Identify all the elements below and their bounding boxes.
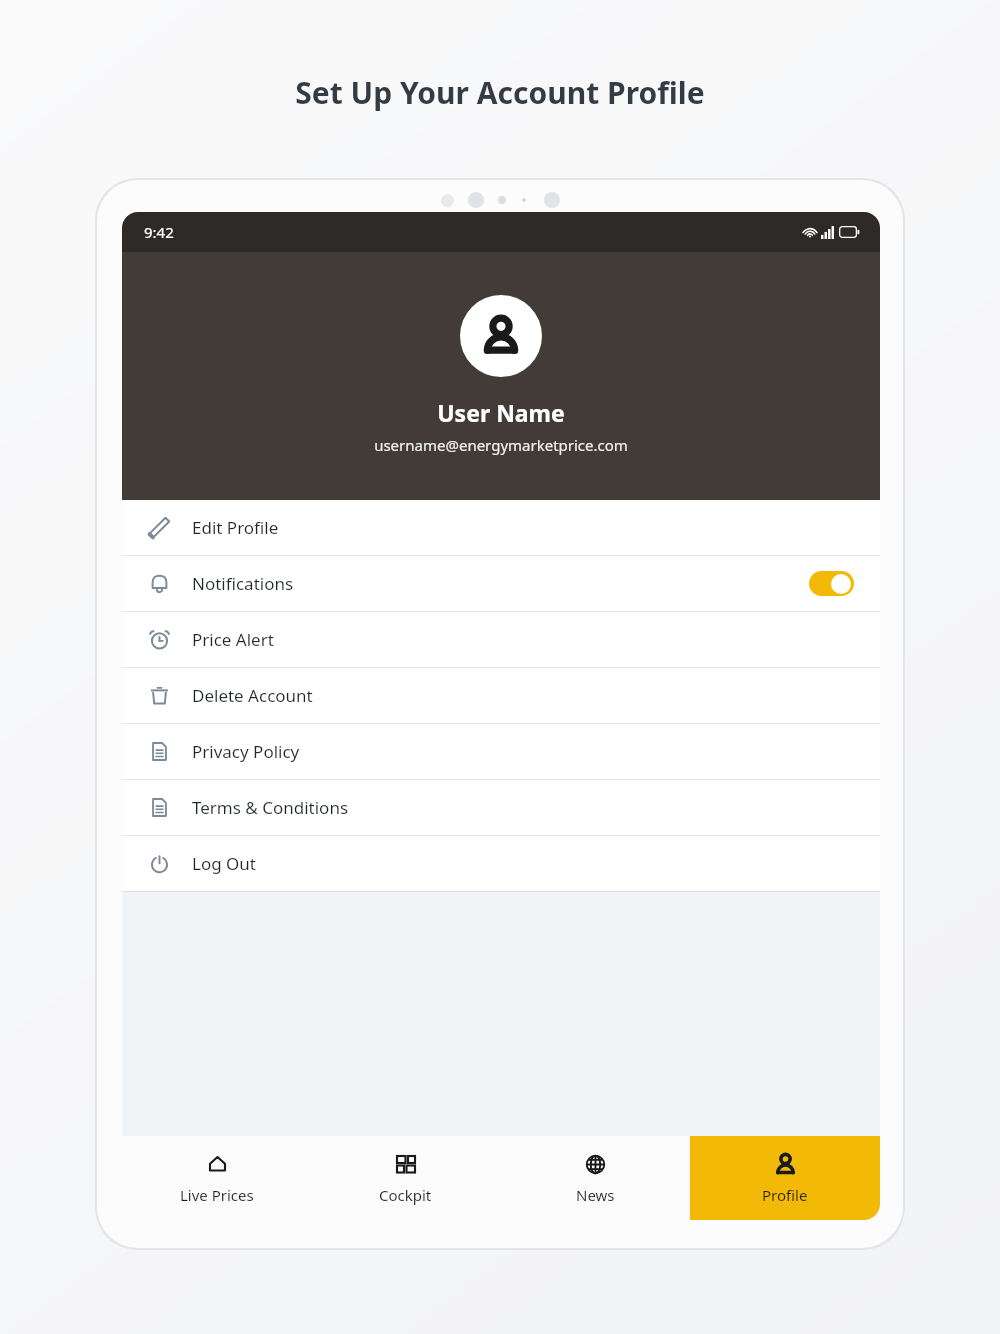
staticText: Delete Account xyxy=(192,684,313,707)
staticText: News xyxy=(576,1185,615,1205)
button[interactable]: Cockpit xyxy=(311,1136,500,1220)
button[interactable]: Terms & Conditions xyxy=(122,780,880,835)
button[interactable]: Profile xyxy=(690,1136,880,1220)
button[interactable]: Live Prices xyxy=(122,1136,311,1220)
staticText: Log Out xyxy=(192,852,256,875)
staticText: Set Up Your Account Profile xyxy=(295,72,705,113)
button[interactable]: Log Out xyxy=(122,836,880,891)
staticText: Terms & Conditions xyxy=(192,796,349,819)
staticText: Profile xyxy=(762,1185,808,1205)
button[interactable]: Notifications toggle xyxy=(809,571,854,596)
button[interactable]: News xyxy=(500,1136,690,1220)
button[interactable]: Delete Account xyxy=(122,668,880,723)
button[interactable]: Price Alert xyxy=(122,612,880,667)
staticText: Notifications xyxy=(192,572,294,595)
staticText: User Name xyxy=(437,397,565,428)
staticText: username@energymarketprice.com xyxy=(374,435,628,455)
staticText: Live Prices xyxy=(180,1185,254,1205)
button[interactable]: Notifications xyxy=(122,556,880,611)
staticText: Edit Profile xyxy=(192,516,279,539)
staticText: Price Alert xyxy=(192,628,274,651)
staticText: 9:42 xyxy=(144,222,174,242)
staticText: Cockpit xyxy=(379,1185,432,1205)
button[interactable]: Privacy Policy xyxy=(122,724,880,779)
staticText: Privacy Policy xyxy=(192,740,300,763)
button[interactable]: Edit Profile xyxy=(122,500,880,555)
